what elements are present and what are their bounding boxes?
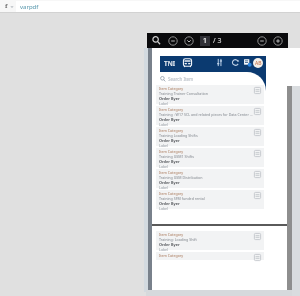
button[interactable]: Open details [253, 149, 261, 157]
button[interactable]: Item Category [156, 190, 264, 209]
staticText: Training SFM funded rental [159, 196, 205, 201]
staticText: Search Item [168, 76, 194, 82]
staticText: Item Category [159, 149, 184, 154]
staticText: Item Category [159, 232, 184, 237]
staticText: Label [159, 206, 169, 210]
button[interactable]: Search document [150, 34, 163, 47]
button[interactable]: Zoom out [255, 34, 268, 47]
staticText: Order Byer [159, 201, 180, 206]
button[interactable]: Open details [253, 170, 261, 178]
button[interactable]: Item Category [156, 127, 264, 146]
button[interactable]: Open details [253, 86, 261, 94]
button[interactable]: Open details [253, 232, 261, 240]
staticText: Label [159, 101, 169, 105]
button[interactable]: Previous page [166, 34, 179, 47]
button[interactable] [16, 1, 300, 12]
button[interactable]: TNI [164, 58, 175, 69]
staticText: Label [159, 143, 169, 147]
button[interactable]: Vehicle [182, 57, 193, 68]
button[interactable]: Item Category [156, 106, 264, 125]
staticText: Training : W17 SCL and related pieces fo… [159, 112, 253, 117]
button[interactable]: Zoom in [271, 34, 284, 47]
button[interactable]: Profile [253, 58, 263, 68]
staticText: Training Loading Shifts [159, 133, 198, 138]
staticText: Item Category [159, 253, 184, 258]
staticText: Order Byer [159, 159, 180, 164]
staticText: Training Trainer Consultation [159, 91, 208, 96]
staticText: Order Byer [159, 242, 180, 247]
button[interactable]: Item Category [156, 231, 264, 250]
staticText: / 3 [213, 36, 222, 46]
staticText: AB [255, 60, 262, 67]
staticText: Item Category [159, 191, 184, 196]
staticText: 1 [203, 36, 208, 46]
staticText: TNI [164, 59, 175, 68]
staticText: Order Byer [159, 138, 180, 143]
staticText: Item Category [159, 107, 184, 112]
staticText: Label [159, 122, 169, 126]
button[interactable]: 1 [200, 36, 210, 46]
button[interactable]: Expand formula bar [9, 3, 14, 10]
staticText: varpdf [20, 3, 39, 11]
button[interactable]: fx [5, 2, 11, 11]
button[interactable]: Open details [253, 128, 261, 136]
staticText: Item Category [159, 170, 184, 175]
staticText: Order Byer [159, 96, 180, 101]
button[interactable]: Open details [253, 191, 261, 199]
staticText: Training: Loading Shift [159, 237, 197, 242]
staticText: Label [159, 247, 169, 251]
staticText: Item Category [159, 128, 184, 133]
button[interactable]: Reports [242, 57, 253, 68]
staticText: Label [159, 185, 169, 189]
button[interactable]: Refresh [230, 57, 241, 68]
button[interactable]: Item Category [156, 252, 264, 260]
staticText: Order Byer [159, 117, 180, 122]
staticText: fx [5, 2, 11, 11]
button[interactable]: Search Item [160, 75, 295, 83]
button[interactable]: Item Category [156, 169, 264, 188]
button[interactable]: Sort [214, 57, 225, 68]
staticText: Label [159, 164, 169, 168]
staticText: Training GSM Distribution [159, 175, 203, 180]
staticText: Training GSM1 Shifts [159, 154, 194, 159]
staticText: Item Category [159, 86, 184, 91]
button[interactable]: Item Category [156, 148, 264, 167]
button[interactable]: Item Category [156, 85, 264, 104]
staticText: Order Byer [159, 180, 180, 185]
button[interactable]: Open details [253, 107, 261, 115]
button[interactable]: Next page [182, 34, 195, 47]
